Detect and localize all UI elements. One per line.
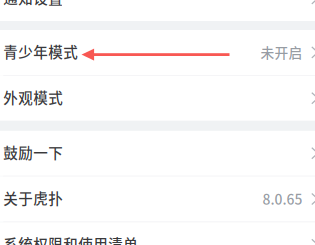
staticText: 青少年模式 [3, 41, 78, 62]
staticText: 关于虎扑 [3, 187, 63, 208]
button[interactable]: 外观模式 [0, 76, 315, 121]
staticText: 8.0.65 [263, 189, 303, 209]
staticText: 系统权限和使用清单 [3, 233, 138, 245]
button[interactable]: 系统权限和使用清单 [0, 222, 315, 245]
staticText: 鼓励一下 [3, 142, 63, 163]
button[interactable]: 鼓励一下 [0, 131, 315, 176]
staticText: 通知设置 [3, 0, 63, 8]
button[interactable]: 关于虎扑 [0, 177, 315, 222]
button[interactable]: 通知设置 [0, 0, 315, 21]
button[interactable]: 青少年模式 [0, 30, 315, 75]
staticText: 未开启 [261, 42, 303, 62]
staticText: 外观模式 [3, 87, 63, 108]
